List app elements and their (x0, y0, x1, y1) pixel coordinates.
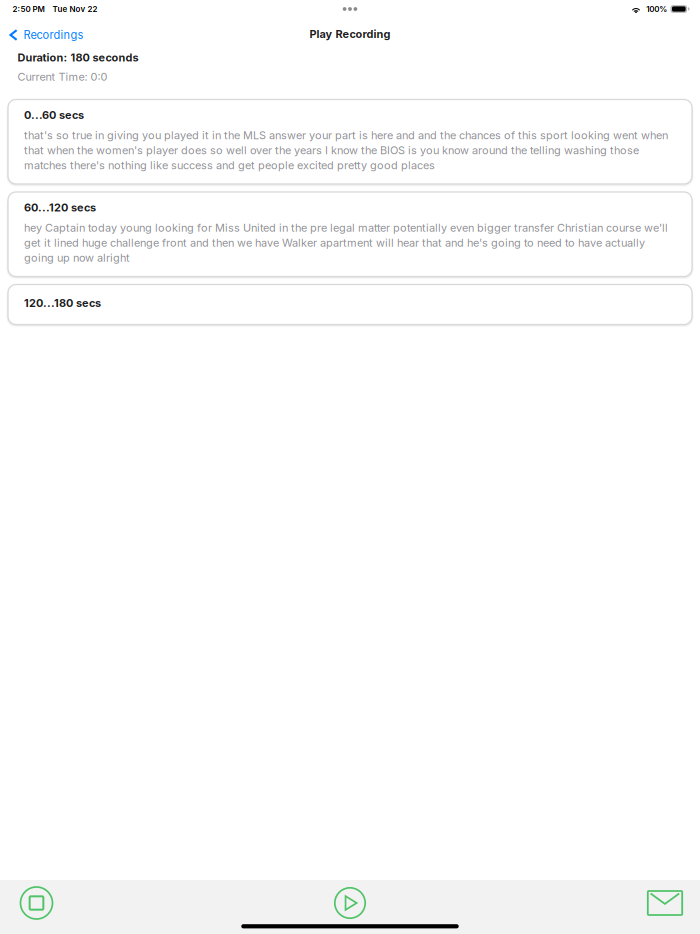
button[interactable]: Email recording (627, 881, 700, 925)
staticText: 120...180 secs (24, 296, 101, 310)
button[interactable]: Play (313, 881, 386, 925)
staticText: that's so true in giving you played it i… (24, 129, 668, 172)
staticText: Play Recording (309, 27, 390, 41)
staticText: Tue Nov 22 (52, 4, 97, 14)
button[interactable]: 60...120 secs (8, 192, 692, 276)
staticText: Duration: 180 seconds (18, 51, 139, 64)
button[interactable]: Stop (0, 881, 73, 925)
staticText: Current Time: 0:0 (18, 70, 108, 83)
button[interactable]: 0...60 secs (8, 99, 692, 184)
staticText: Recordings (23, 28, 83, 42)
staticText: 60...120 secs (24, 201, 96, 214)
staticText: 100% (646, 4, 667, 14)
button[interactable]: Recordings (0, 20, 91, 46)
button[interactable]: 120...180 secs (8, 284, 692, 324)
staticText: 0...60 secs (24, 108, 84, 122)
staticText: hey Captain today young looking for Miss… (24, 221, 668, 264)
staticText: 2:50 PM (12, 4, 44, 14)
